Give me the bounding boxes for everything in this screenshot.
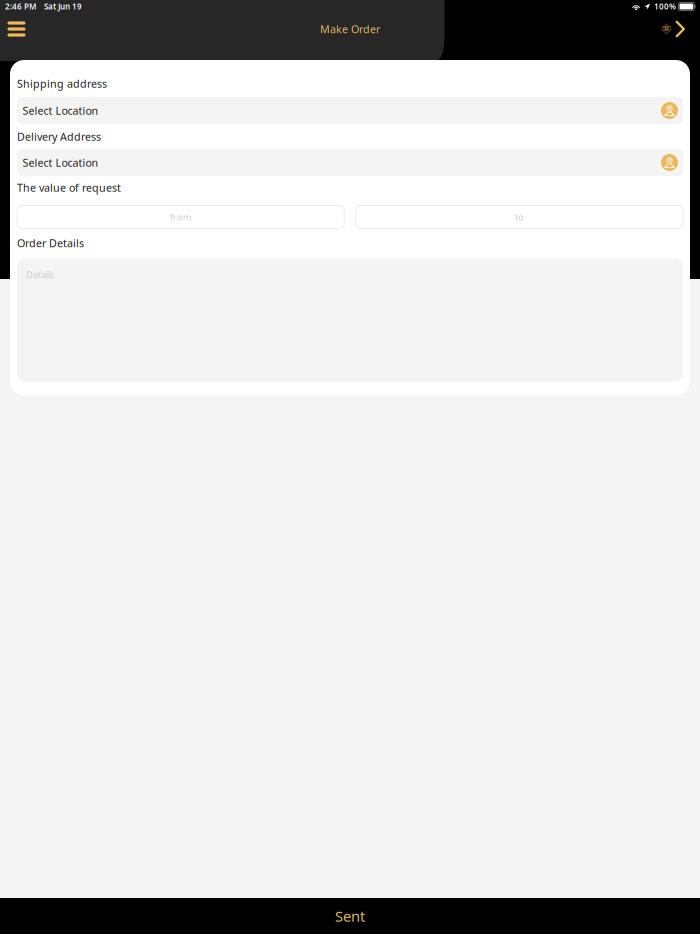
staticText: Sent (335, 906, 365, 926)
button[interactable]: Select Location (17, 97, 683, 124)
staticText: Details (26, 268, 54, 281)
staticText: 100% (654, 1, 676, 12)
staticText: Order Details (17, 236, 84, 250)
staticText: Select Location (22, 103, 98, 118)
button[interactable]: Sent (0, 898, 700, 934)
button[interactable]: from (17, 205, 344, 228)
button[interactable]: Next page (653, 16, 700, 42)
staticText: Select Location (22, 155, 98, 170)
staticText: Sat Jun 19 (44, 1, 82, 12)
staticText: Delivery Address (17, 129, 101, 144)
staticText: 2:46 PM (5, 1, 36, 12)
button[interactable]: Menu (0, 13, 35, 45)
staticText: to (515, 211, 524, 223)
button[interactable]: Select Location (17, 149, 683, 176)
staticText: Shipping address (17, 76, 107, 91)
staticText: from (170, 211, 192, 223)
staticText: Make Order (320, 22, 380, 36)
staticText: The value of request (17, 180, 121, 195)
